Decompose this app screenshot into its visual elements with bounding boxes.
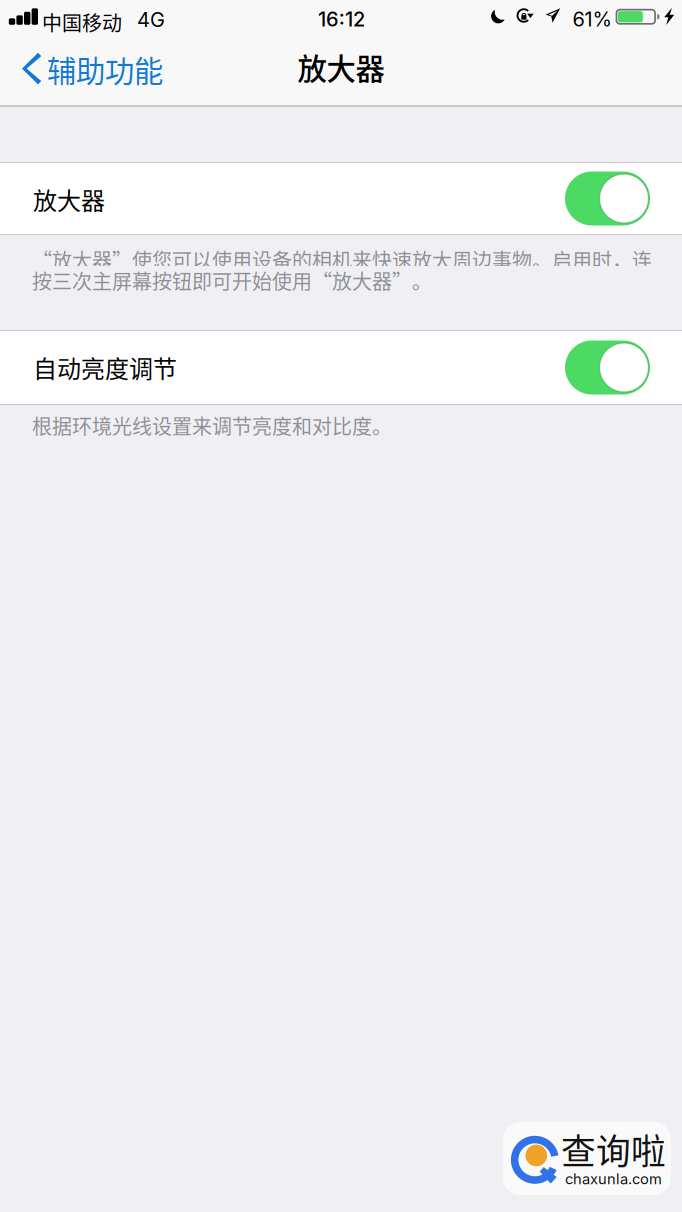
button[interactable]: 自动亮度调节 (0, 331, 682, 404)
staticText: 根据环境光线设置来调节亮度和对比度。 (32, 411, 392, 440)
staticText: 辅助功能 (47, 48, 163, 90)
staticText: 查询啦 (561, 1124, 666, 1174)
button[interactable]: 放大器 (0, 163, 682, 234)
staticText: “放大器”使您可以使用设备的相机来快速放大周边事物。启用时，连 (32, 245, 652, 274)
staticText: 中国移动 (42, 7, 122, 36)
button[interactable]: 辅助功能 (0, 40, 190, 105)
staticText: 按三次主屏幕按钮即可开始使用“放大器”。 (32, 266, 432, 295)
staticText: 4G (137, 7, 165, 32)
staticText: 放大器 (297, 46, 384, 88)
staticText: chaxunla.com (565, 1170, 662, 1188)
staticText: 61% (572, 7, 611, 31)
staticText: 放大器 (33, 182, 105, 217)
staticText: 自动亮度调节 (33, 350, 177, 385)
staticText: 16:12 (318, 7, 365, 31)
